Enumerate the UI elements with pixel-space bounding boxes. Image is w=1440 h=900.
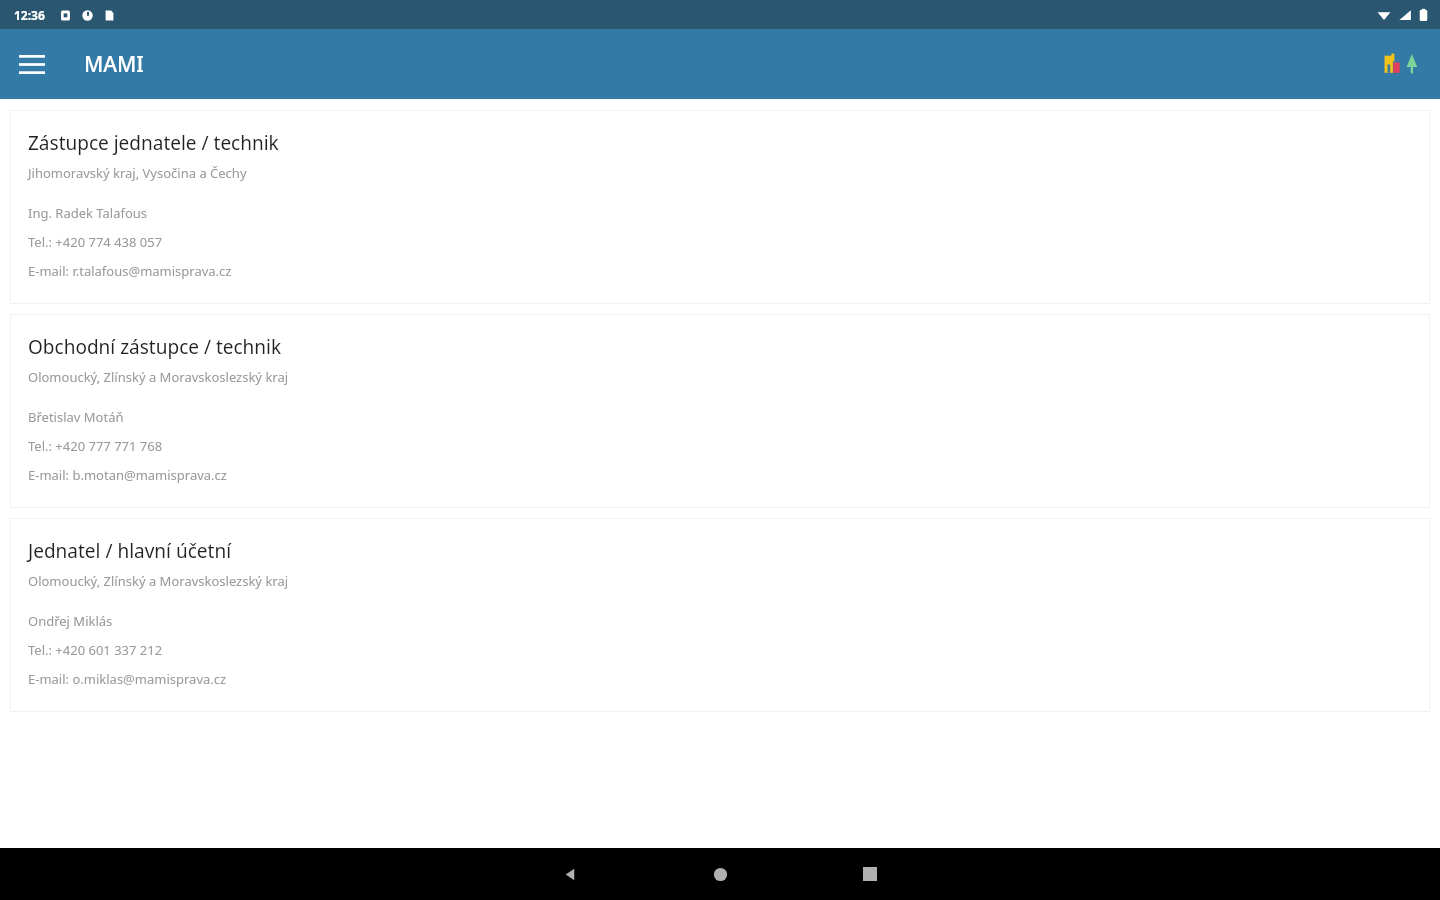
staticText: E-mail: b.motan@mamisprava.cz — [28, 466, 227, 484]
button[interactable]: MAMI logo — [1376, 38, 1428, 90]
staticText: Tel.: +420 774 438 057 — [28, 233, 163, 251]
staticText: Zástupce jednatele / technik — [28, 130, 279, 156]
staticText: Břetislav Motáň — [28, 408, 124, 426]
staticText: Jihomoravský kraj, Vysočina a Čechy — [28, 164, 247, 182]
staticText: Obchodní zástupce / technik — [28, 334, 282, 360]
staticText: Ing. Radek Talafous — [28, 204, 148, 222]
staticText: MAMI — [84, 50, 144, 79]
button[interactable]: Jednatel / hlavní účetní — [10, 518, 1430, 712]
staticText: 12:36 — [14, 7, 45, 23]
button[interactable]: Zástupce jednatele / technik — [10, 110, 1430, 304]
staticText: E-mail: r.talafous@mamisprava.cz — [28, 262, 232, 280]
staticText: Olomoucký, Zlínský a Moravskoslezský kra… — [28, 368, 289, 386]
button[interactable]: Recent apps — [795, 848, 945, 900]
staticText: Jednatel / hlavní účetní — [28, 538, 232, 564]
staticText: Tel.: +420 601 337 212 — [28, 641, 163, 659]
staticText: Ondřej Miklás — [28, 612, 113, 630]
staticText: Tel.: +420 777 771 768 — [28, 437, 163, 455]
staticText: E-mail: o.miklas@mamisprava.cz — [28, 670, 227, 688]
button[interactable]: Home — [645, 848, 795, 900]
button[interactable]: Back — [495, 848, 645, 900]
button[interactable]: Open navigation menu — [8, 40, 56, 88]
staticText: Olomoucký, Zlínský a Moravskoslezský kra… — [28, 572, 289, 590]
button[interactable]: Obchodní zástupce / technik — [10, 314, 1430, 508]
